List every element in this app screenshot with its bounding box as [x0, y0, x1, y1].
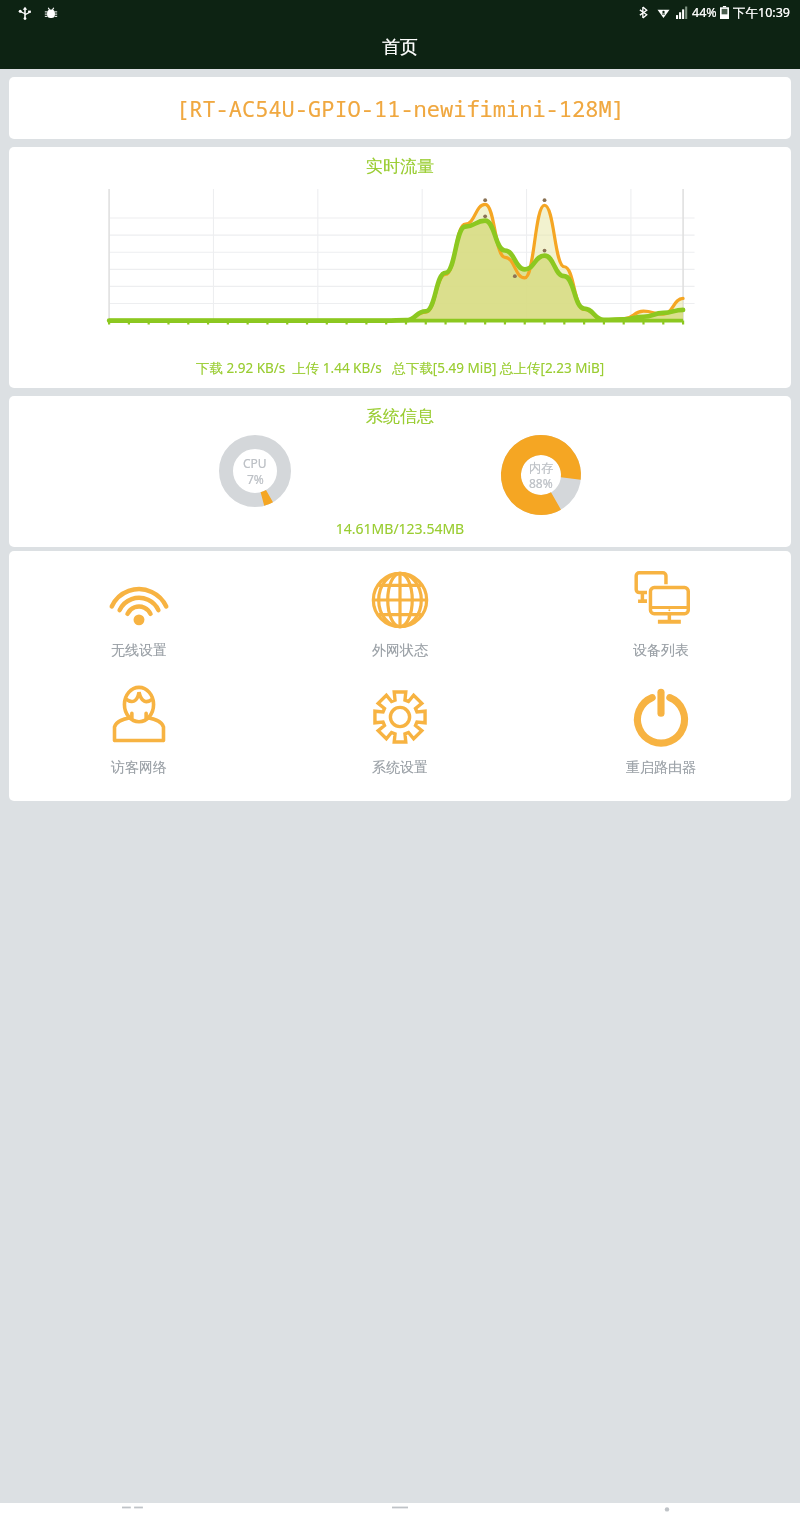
button[interactable]: Recents [0, 1503, 266, 1518]
button[interactable]: 无线设置 [9, 565, 269, 664]
staticText: 外网状态 [372, 642, 428, 660]
staticText: [RT-AC54U-GPIO-11-newifimini-128M] [176, 93, 625, 123]
other: 重启路由器 [630, 686, 692, 748]
staticText: CPU [243, 455, 267, 471]
button[interactable]: 系统信息 [9, 396, 791, 547]
other: 访客网络 [108, 686, 170, 748]
button[interactable]: Back [533, 1503, 800, 1518]
staticText: 实时流量 [9, 156, 791, 177]
staticText: 首页 [382, 36, 418, 59]
staticText: 下载 2.92 KB/s 上传 1.44 KB/s 总下载[5.49 MiB] … [9, 359, 791, 377]
other: 无线设置 [108, 569, 170, 631]
other: 系统设置 [369, 686, 431, 748]
staticText: 系统信息 [9, 406, 791, 427]
button[interactable]: 实时流量 [9, 147, 791, 388]
staticText: 14.61MB/123.54MB [9, 519, 791, 538]
staticText: 内存 [529, 460, 553, 475]
staticText: 系统设置 [372, 759, 428, 777]
button[interactable]: [RT-AC54U-GPIO-11-newifimini-128M] [9, 77, 791, 139]
staticText: 88% [529, 475, 553, 491]
staticText: 重启路由器 [626, 759, 696, 777]
staticText: 下午10:39 [733, 4, 790, 21]
button[interactable]: 访客网络 [9, 682, 269, 781]
staticText: 设备列表 [633, 642, 689, 660]
button[interactable]: Home [266, 1503, 533, 1518]
staticText: 7% [247, 471, 264, 487]
other: 外网状态 [369, 569, 431, 631]
button[interactable]: 系统设置 [269, 682, 530, 781]
other: 设备列表 [630, 569, 692, 631]
button[interactable]: 重启路由器 [530, 682, 791, 781]
staticText: 访客网络 [111, 759, 167, 777]
staticText: 44% [692, 4, 717, 21]
button[interactable]: 设备列表 [530, 565, 791, 664]
button[interactable]: 外网状态 [269, 565, 530, 664]
staticText: 无线设置 [111, 642, 167, 660]
